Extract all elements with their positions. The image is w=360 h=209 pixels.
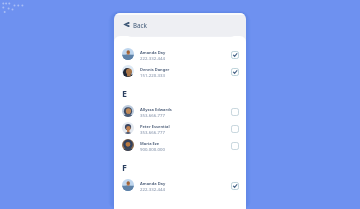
- staticText: Dennis Danger: [140, 67, 170, 72]
- staticText: Allyssa Edwards: [140, 107, 172, 112]
- staticText: 151-220-333: [140, 72, 165, 78]
- button[interactable]: Select contact: [231, 142, 239, 150]
- button[interactable]: Amanda Day: [114, 45, 246, 62]
- staticText: Maria Eze: [140, 141, 160, 146]
- staticText: 900-000-000: [140, 146, 165, 152]
- button[interactable]: Name or phone: [124, 36, 238, 37]
- staticText: Amanda Day: [140, 50, 166, 55]
- staticText: E: [122, 87, 128, 99]
- button[interactable]: Selected contact: [231, 182, 239, 190]
- staticText: F: [122, 161, 127, 173]
- staticText: Amanda Day: [140, 181, 166, 186]
- staticText: 353-666-777: [140, 112, 165, 118]
- staticText: Back: [133, 21, 148, 29]
- button[interactable]: Back: [114, 13, 246, 36]
- staticText: 222-332-444: [140, 55, 165, 61]
- staticText: 353-666-777: [140, 129, 165, 135]
- button[interactable]: Maria Eze: [114, 136, 246, 153]
- button[interactable]: Dennis Danger: [114, 62, 246, 79]
- button[interactable]: Select contact: [231, 125, 239, 133]
- staticText: 222-332-444: [140, 186, 165, 192]
- button[interactable]: Amanda Day: [114, 176, 246, 193]
- button[interactable]: Allyssa Edwards: [114, 102, 246, 119]
- button[interactable]: Select contact: [231, 108, 239, 116]
- button[interactable]: Selected contact: [231, 51, 239, 59]
- button[interactable]: Peter Essential: [114, 119, 246, 136]
- staticText: Peter Essential: [140, 124, 170, 129]
- button[interactable]: Selected contact: [231, 68, 239, 76]
